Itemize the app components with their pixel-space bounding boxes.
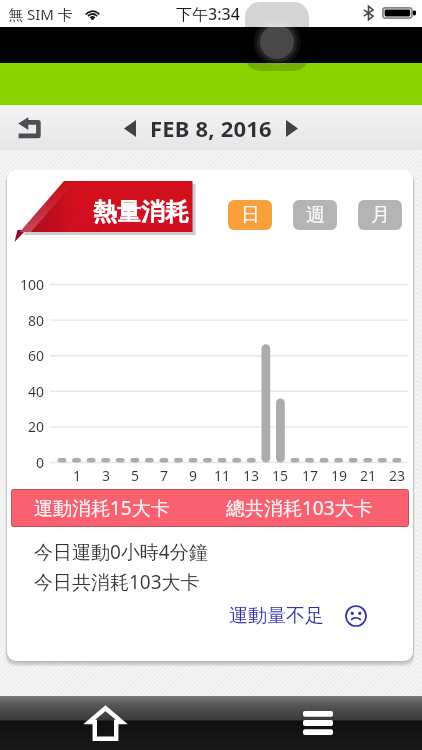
staticText: 13: [238, 466, 264, 485]
staticText: 15: [267, 466, 293, 485]
button[interactable]: Previous day: [117, 115, 143, 141]
staticText: 運動消耗15大卡: [34, 495, 170, 521]
staticText: 100: [6, 275, 44, 294]
staticText: 日: [241, 203, 260, 227]
staticText: FEB 8, 2016: [150, 113, 272, 143]
button[interactable]: Home: [75, 700, 136, 746]
staticText: 下午3:34: [176, 3, 240, 25]
staticText: 3: [93, 466, 119, 485]
staticText: 9: [180, 466, 206, 485]
staticText: 月: [371, 203, 390, 227]
button[interactable]: 日: [228, 200, 272, 230]
staticText: 今日運動0小時4分鐘: [34, 539, 208, 565]
staticText: 今日共消耗103大卡: [34, 569, 200, 595]
staticText: 無 SIM 卡: [8, 4, 73, 24]
staticText: 20: [6, 417, 44, 436]
staticText: 運動量不足: [229, 604, 324, 628]
button[interactable]: 週: [293, 200, 337, 230]
staticText: 總共消耗103大卡: [226, 495, 373, 521]
staticText: 5: [122, 466, 148, 485]
staticText: 0: [6, 453, 44, 472]
staticText: 40: [6, 382, 44, 401]
staticText: 週: [306, 203, 325, 227]
button[interactable]: 運動消耗15大卡: [12, 490, 408, 526]
staticText: 17: [297, 466, 323, 485]
staticText: 1: [64, 466, 90, 485]
button[interactable]: Back: [10, 109, 48, 145]
button[interactable]: Menu: [287, 700, 348, 746]
button[interactable]: Next day: [279, 115, 305, 141]
staticText: 21: [355, 466, 381, 485]
button[interactable]: 月: [358, 200, 402, 230]
staticText: 熱量消耗: [93, 197, 189, 227]
staticText: 80: [6, 311, 44, 330]
staticText: 7: [151, 466, 177, 485]
staticText: 19: [326, 466, 352, 485]
staticText: 60: [6, 346, 44, 365]
button[interactable]: 運動量不足: [229, 604, 367, 628]
staticText: 11: [209, 466, 235, 485]
staticText: 23: [384, 466, 410, 485]
